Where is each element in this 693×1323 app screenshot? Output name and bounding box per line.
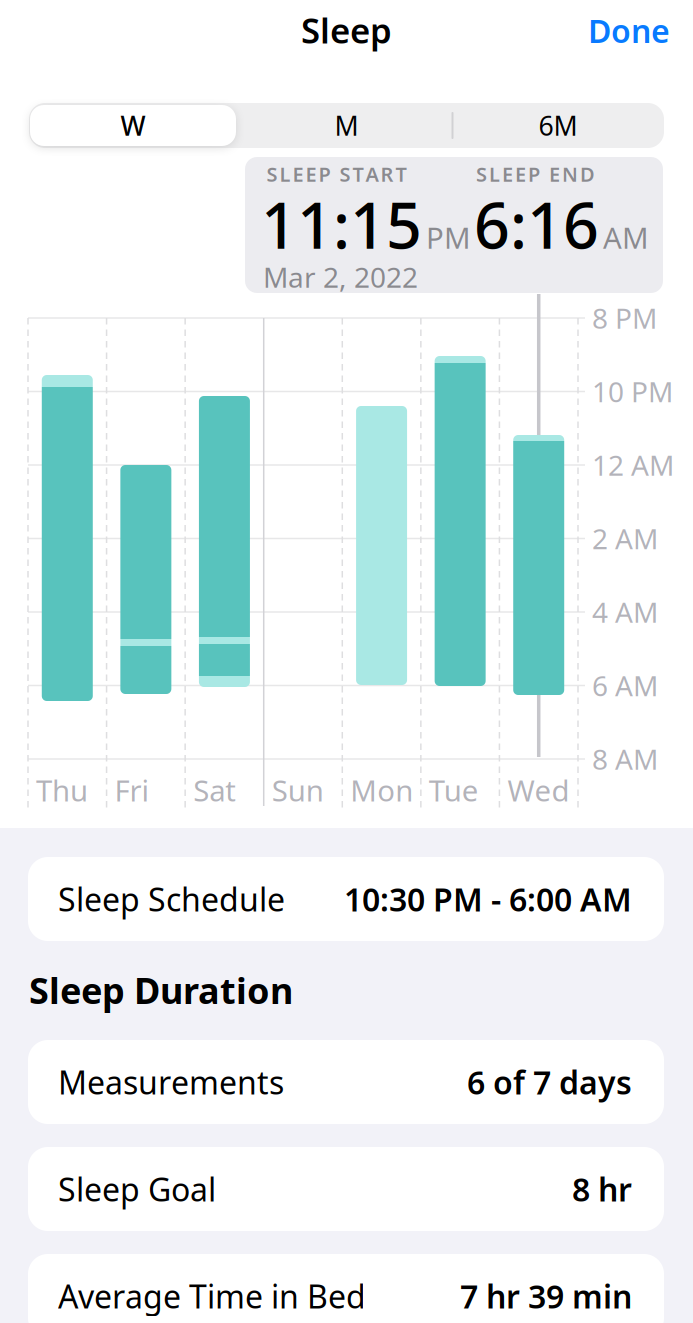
staticText: 7 hr 39 min [460, 1275, 632, 1317]
staticText: W [120, 108, 145, 143]
staticText: Average Time in Bed [58, 1275, 366, 1317]
button[interactable]: Sleep Schedule [28, 857, 664, 941]
staticText: 11:15 [261, 183, 422, 266]
staticText: 8 PM [592, 299, 657, 337]
staticText: 2 AM [592, 520, 658, 557]
staticText: S L E E P S T A R T [266, 161, 406, 187]
button[interactable]: M [256, 103, 436, 148]
staticText: AM [603, 218, 649, 257]
staticText: Thu [36, 770, 88, 809]
staticText: Mar 2, 2022 [263, 258, 418, 296]
staticText: Fri [115, 770, 150, 809]
staticText: M [334, 108, 358, 143]
staticText: 8 hr [572, 1168, 632, 1210]
button[interactable]: Done [588, 9, 670, 52]
staticText: Sleep Goal [58, 1168, 216, 1210]
button[interactable]: Average Time in Bed [28, 1254, 664, 1323]
staticText: PM [426, 218, 471, 257]
staticText: Done [588, 9, 670, 52]
staticText: 6 AM [592, 667, 658, 704]
staticText: Measurements [58, 1061, 284, 1103]
staticText: 10 PM [592, 373, 673, 410]
staticText: Tue [429, 770, 479, 809]
button[interactable]: Sleep Goal [28, 1147, 664, 1231]
staticText: 6 of 7 days [467, 1061, 632, 1103]
staticText: 12 AM [592, 446, 674, 484]
staticText: Sleep Schedule [58, 878, 285, 920]
staticText: Sleep [301, 7, 392, 53]
staticText: Sleep Duration [29, 966, 293, 1014]
staticText: 4 AM [592, 593, 658, 631]
button[interactable]: W [30, 105, 236, 146]
staticText: 6M [538, 108, 577, 143]
staticText: 8 AM [592, 740, 658, 778]
staticText: 10:30 PM - 6:00 AM [344, 878, 632, 920]
staticText: Sat [193, 770, 236, 809]
button[interactable]: 6M [468, 103, 648, 148]
staticText: Mon [350, 770, 413, 809]
staticText: S L E E P E N D [476, 161, 595, 187]
button[interactable]: Measurements [28, 1040, 664, 1124]
staticText: 6:16 [474, 183, 599, 266]
staticText: Sun [272, 770, 324, 809]
staticText: Wed [507, 770, 569, 809]
